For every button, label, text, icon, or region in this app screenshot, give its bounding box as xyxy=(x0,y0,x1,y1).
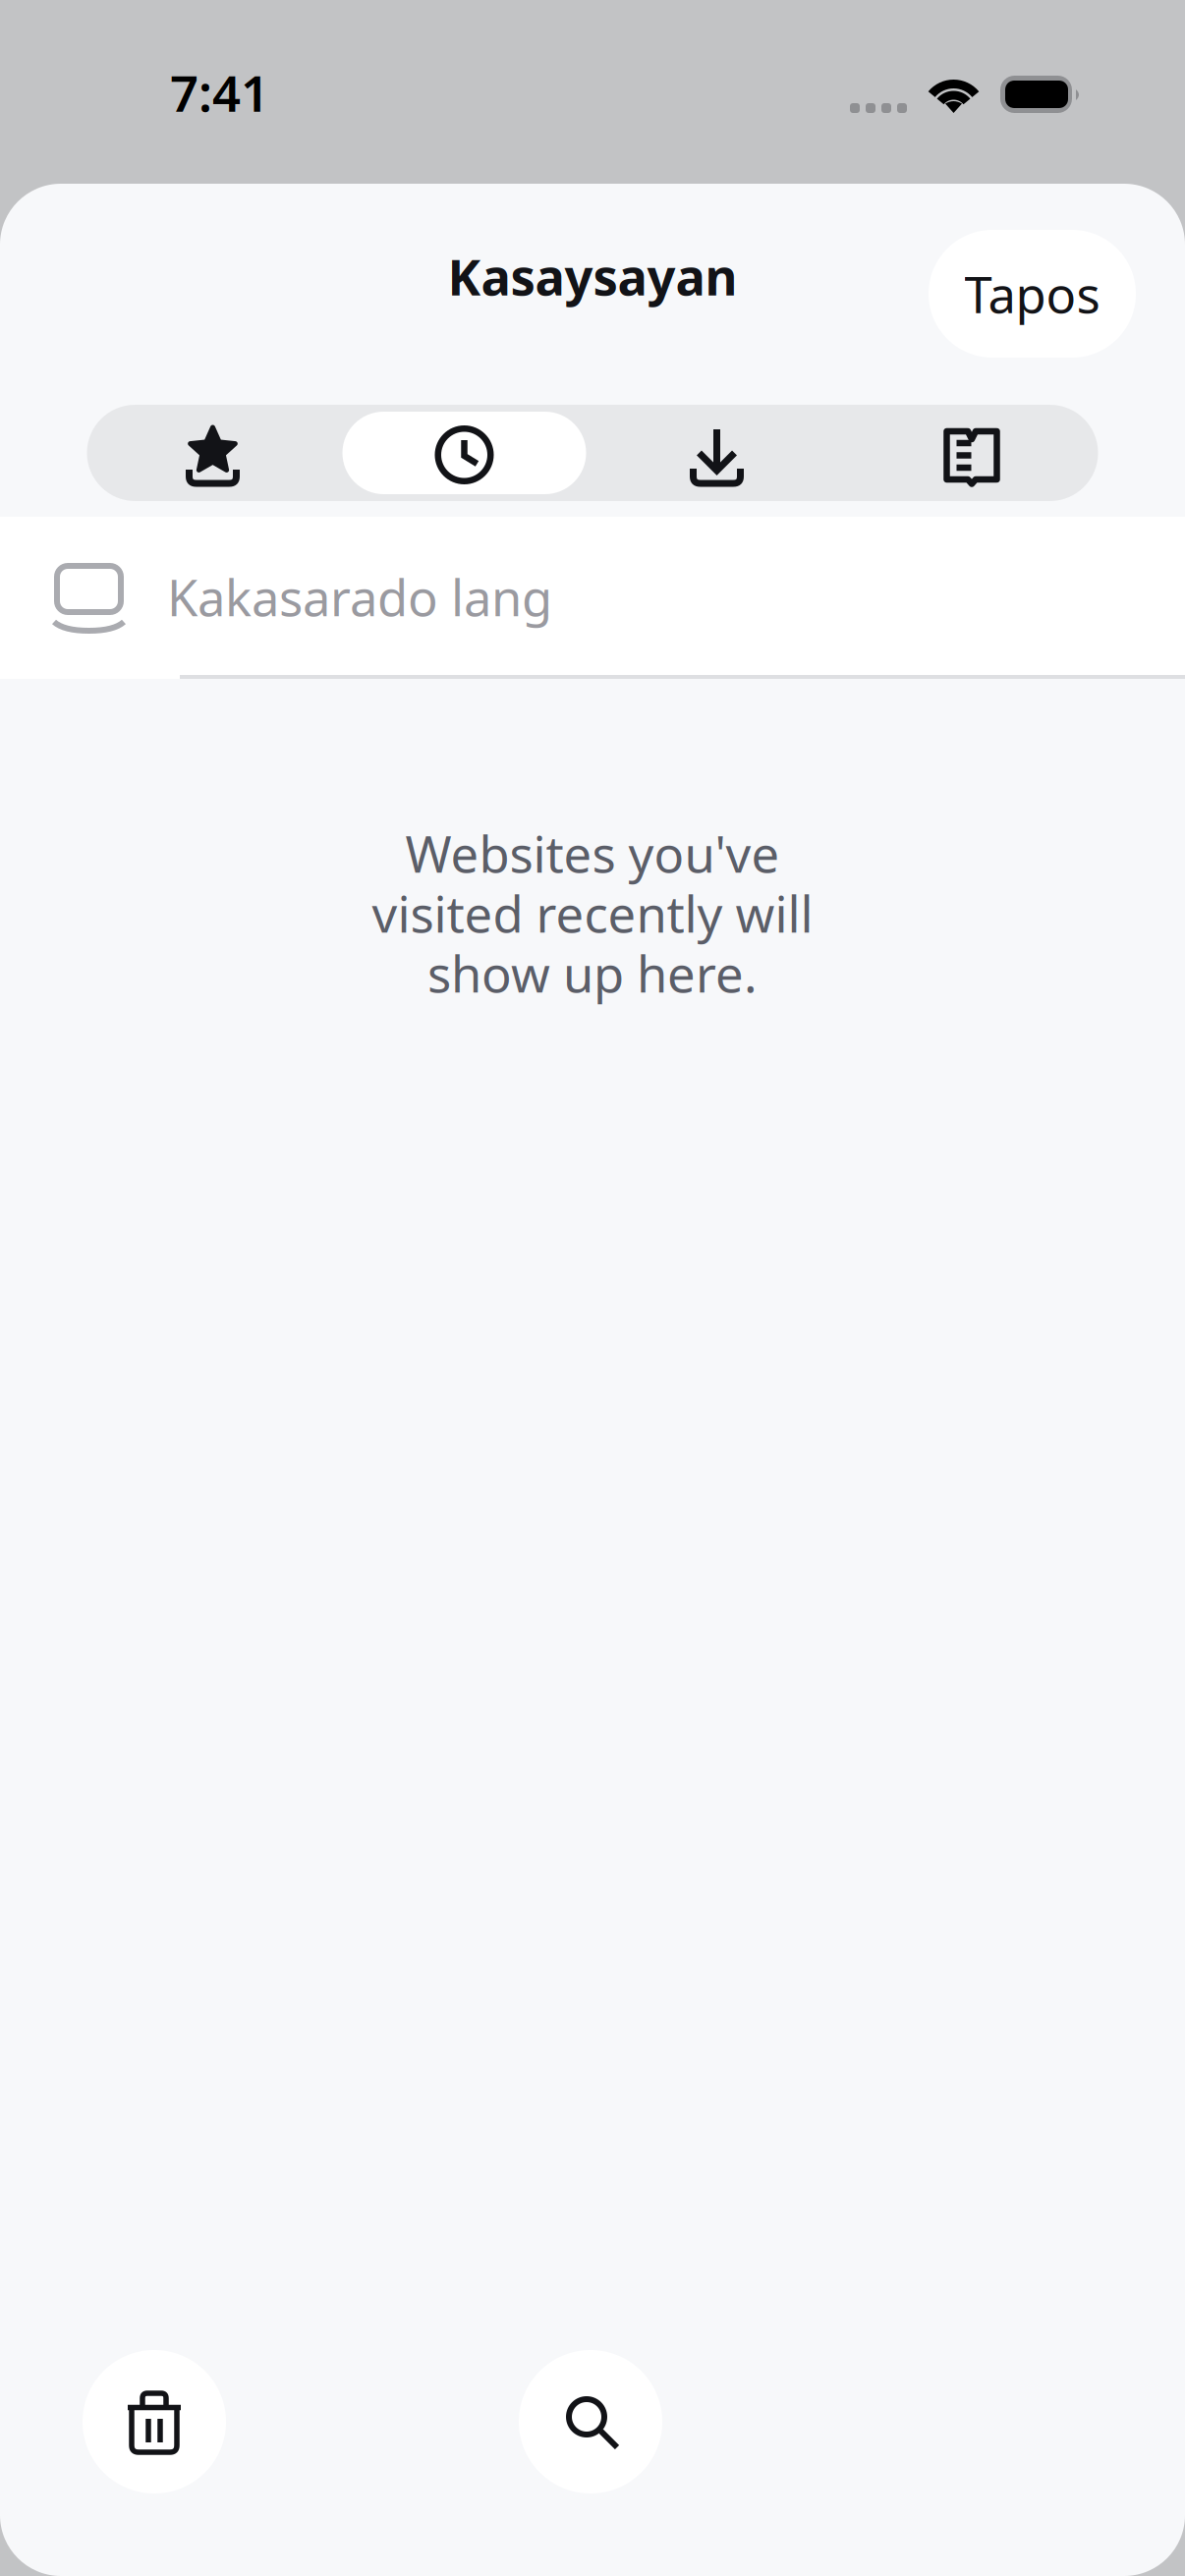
button[interactable]: Listahan ng Babasahin xyxy=(943,427,1002,488)
staticText: 7:41 xyxy=(170,59,269,125)
button[interactable]: Mga Bookmark xyxy=(183,422,242,489)
button[interactable]: Maghanap xyxy=(519,2350,662,2493)
button[interactable]: Burahin xyxy=(83,2350,226,2493)
staticText: Kakasarado lang xyxy=(167,564,552,630)
button[interactable]: Mga Download xyxy=(689,409,748,485)
staticText: Websites you've xyxy=(405,820,780,886)
staticText: show up here. xyxy=(427,940,758,1006)
button[interactable]: Kasaysayan xyxy=(435,425,494,484)
button[interactable]: Tapos xyxy=(929,230,1136,358)
staticText: visited recently will xyxy=(372,880,813,946)
staticText: Tapos xyxy=(964,261,1100,327)
staticText: Kasaysayan xyxy=(448,243,737,309)
